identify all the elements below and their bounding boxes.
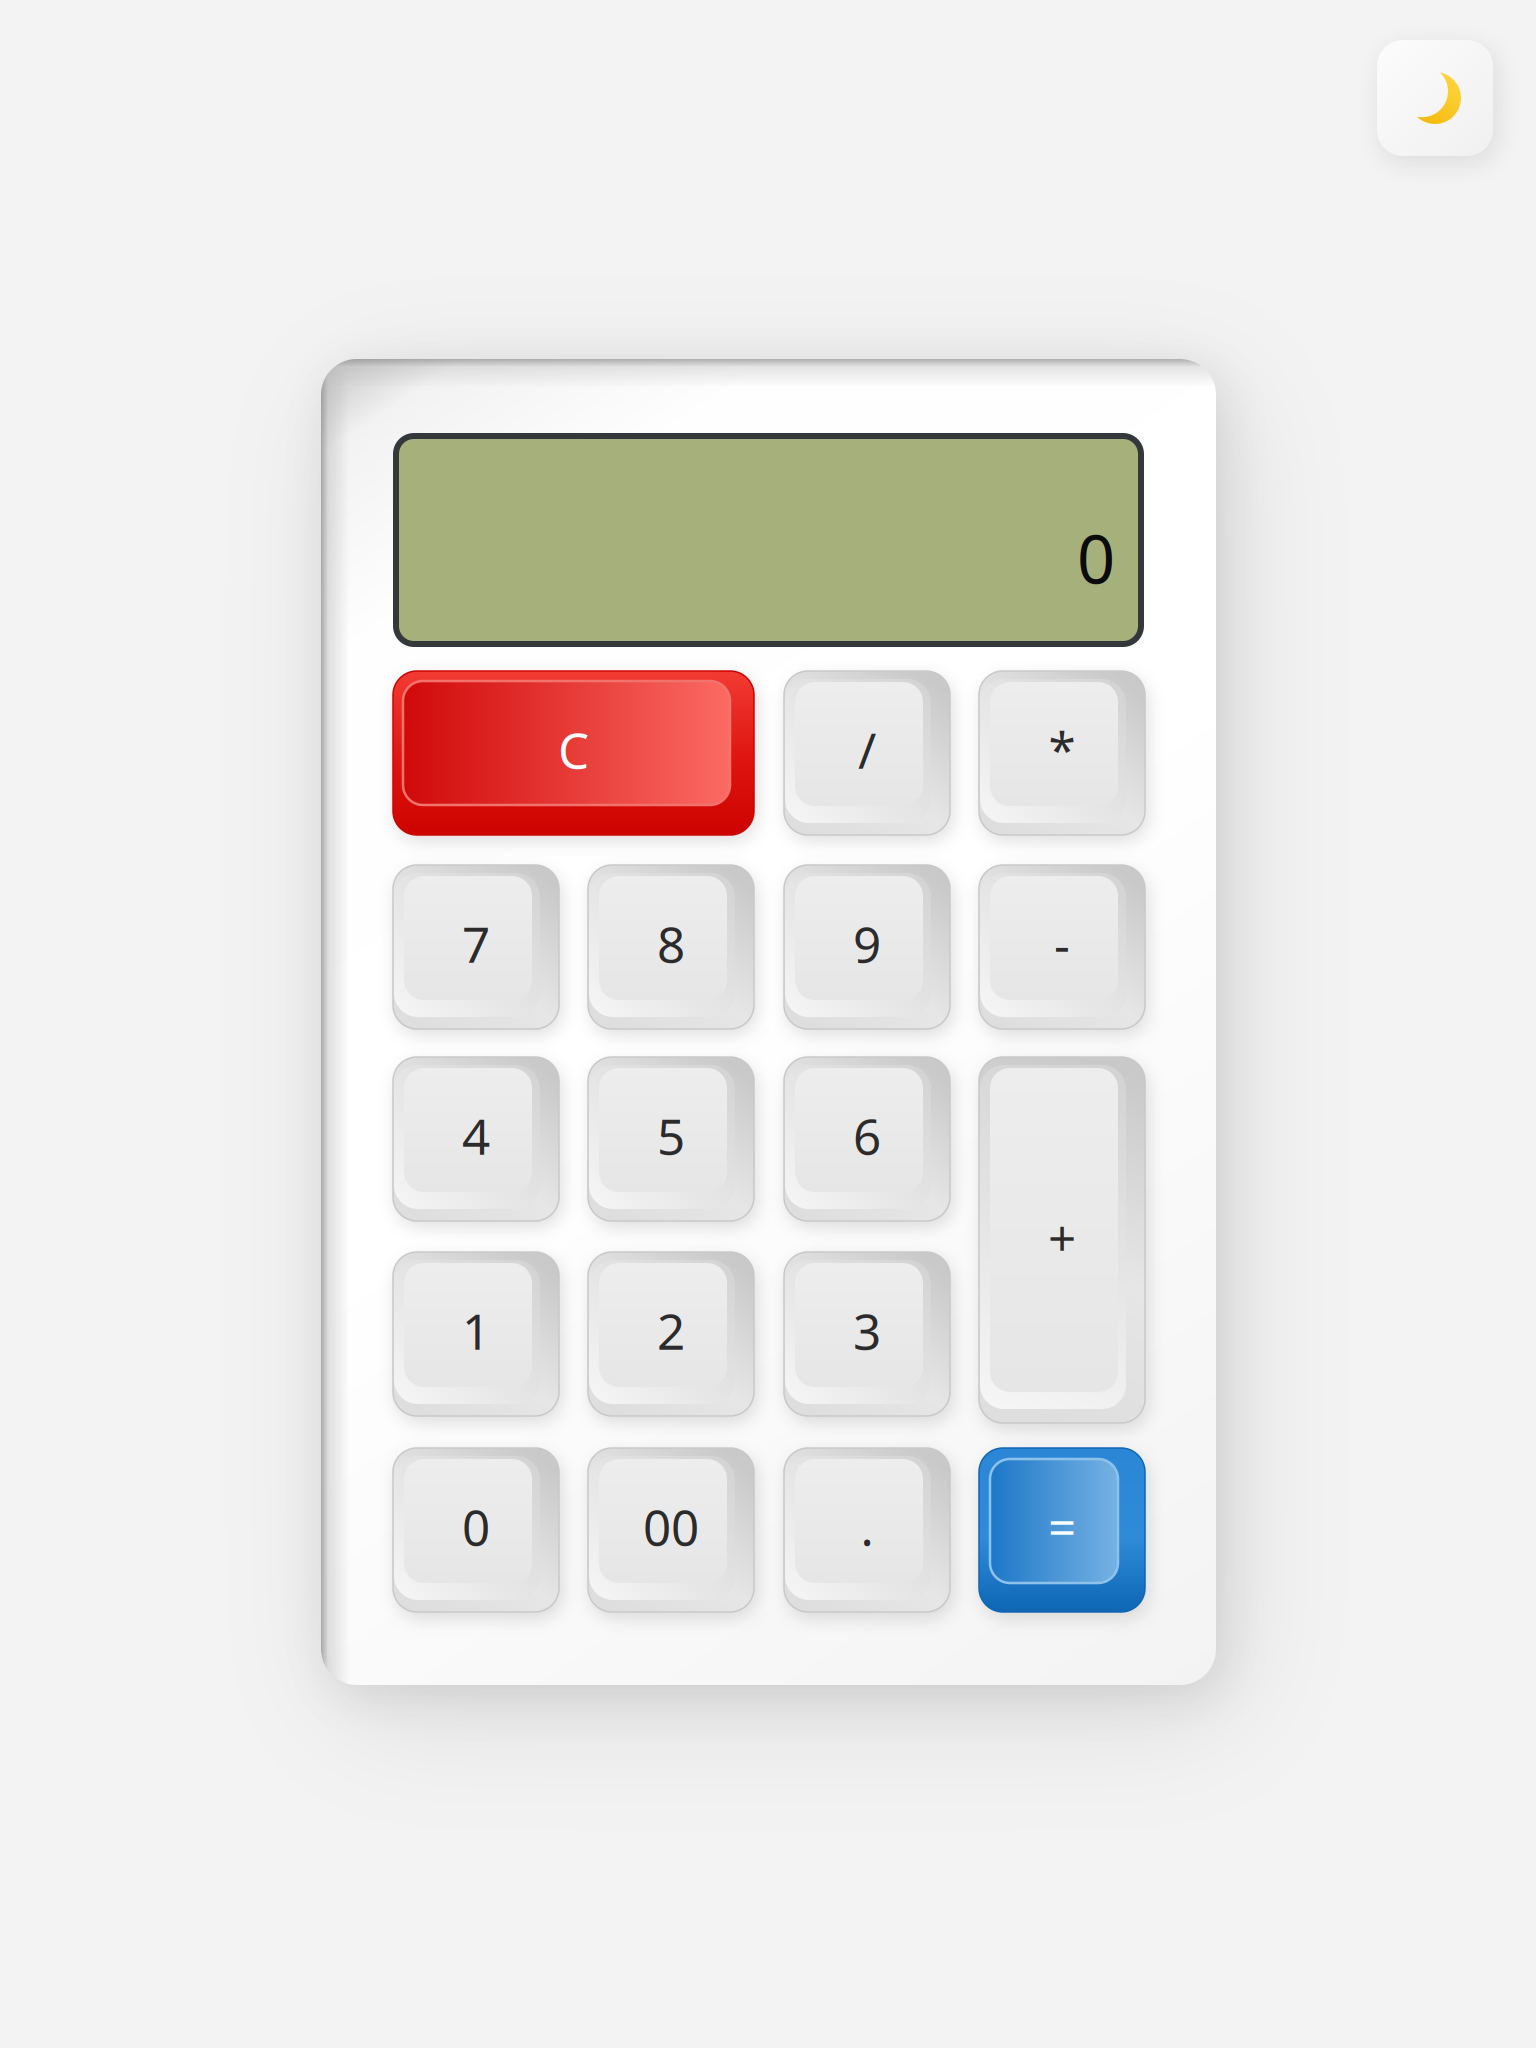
staticText: C [558, 717, 589, 782]
button[interactable]: 5 [588, 1057, 754, 1221]
staticText: 0 [462, 1494, 490, 1559]
staticText: 7 [462, 911, 490, 976]
staticText: 1 [462, 1298, 490, 1363]
staticText: + [1048, 1204, 1076, 1269]
button[interactable]: 6 [784, 1057, 950, 1221]
button[interactable]: 0 [393, 1448, 559, 1612]
button[interactable]: 4 [393, 1057, 559, 1221]
staticText: 0 [1077, 514, 1115, 602]
staticText: . [860, 1494, 873, 1559]
staticText: 4 [462, 1103, 490, 1168]
staticText: 00 [643, 1494, 699, 1559]
staticText: 9 [853, 911, 881, 976]
staticText: * [1048, 717, 1075, 782]
button[interactable]: 2 [588, 1252, 754, 1416]
button[interactable]: C [393, 671, 754, 835]
button[interactable]: / [784, 671, 950, 835]
button[interactable]: 3 [784, 1252, 950, 1416]
staticText: / [858, 717, 876, 782]
staticText: 2 [657, 1298, 685, 1363]
button[interactable]: 00 [588, 1448, 754, 1612]
button[interactable]: - [979, 865, 1145, 1029]
staticText: = [1048, 1494, 1076, 1559]
button[interactable]: 1 [393, 1252, 559, 1416]
button[interactable]: = [979, 1448, 1145, 1612]
staticText: 3 [853, 1298, 881, 1363]
button[interactable]: 8 [588, 865, 754, 1029]
staticText: 5 [657, 1103, 685, 1168]
staticText: 8 [657, 911, 685, 976]
button[interactable]: . [784, 1448, 950, 1612]
button[interactable]: Toggle dark mode [1377, 40, 1493, 156]
staticText: 6 [853, 1103, 881, 1168]
staticText: - [1054, 911, 1070, 976]
button[interactable]: 9 [784, 865, 950, 1029]
button[interactable]: 7 [393, 865, 559, 1029]
button[interactable]: * [979, 671, 1145, 835]
button[interactable]: + [979, 1057, 1145, 1423]
